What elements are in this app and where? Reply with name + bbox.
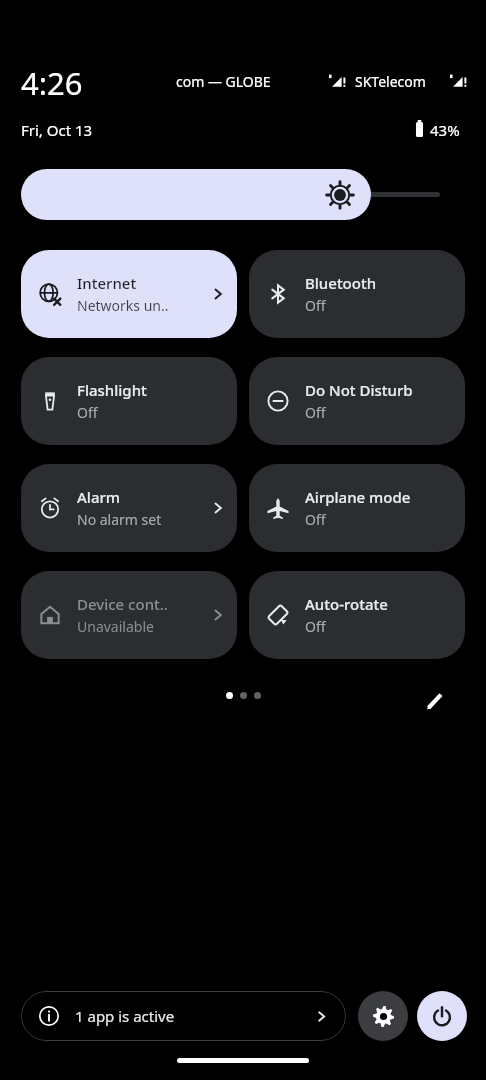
button[interactable]: Settings bbox=[358, 991, 408, 1041]
staticText: Off bbox=[305, 617, 326, 636]
button[interactable]: Bluetooth bbox=[249, 250, 465, 338]
button[interactable]: Power bbox=[417, 991, 467, 1041]
staticText: Flashlight bbox=[77, 380, 147, 400]
button[interactable]: 1 app is active bbox=[21, 991, 346, 1041]
staticText: Off bbox=[305, 403, 326, 422]
staticText: Auto-rotate bbox=[305, 594, 388, 614]
staticText: 43% bbox=[430, 120, 460, 140]
button[interactable]: Airplane mode bbox=[249, 464, 465, 552]
staticText: Off bbox=[305, 296, 326, 315]
button[interactable]: Do Not Disturb bbox=[249, 357, 465, 445]
staticText: Unavailable bbox=[77, 617, 154, 636]
staticText: Off bbox=[305, 510, 326, 529]
button[interactable]: Edit tiles bbox=[420, 686, 450, 716]
button[interactable]: Brightness bbox=[21, 169, 371, 220]
staticText: Bluetooth bbox=[305, 273, 377, 293]
staticText: Do Not Disturb bbox=[305, 380, 413, 400]
staticText: Device cont.. bbox=[77, 594, 168, 614]
button[interactable]: Auto-rotate bbox=[249, 571, 465, 659]
staticText: SKTelecom bbox=[355, 72, 426, 91]
staticText: Off bbox=[77, 403, 98, 422]
staticText: Fri, Oct 13 bbox=[21, 120, 93, 140]
staticText: 1 app is active bbox=[75, 1006, 315, 1026]
button[interactable]: Internet bbox=[21, 250, 237, 338]
staticText: Internet bbox=[77, 273, 137, 293]
staticText: No alarm set bbox=[77, 510, 162, 529]
staticText: Networks un.. bbox=[77, 296, 169, 315]
staticText: Alarm bbox=[77, 487, 121, 507]
button[interactable]: Alarm bbox=[21, 464, 237, 552]
staticText: com — GLOBE bbox=[176, 72, 271, 91]
staticText: Airplane mode bbox=[305, 487, 411, 507]
button[interactable]: Device cont.. bbox=[21, 571, 237, 659]
staticText: 4:26 bbox=[21, 62, 83, 104]
button[interactable]: Flashlight bbox=[21, 357, 237, 445]
